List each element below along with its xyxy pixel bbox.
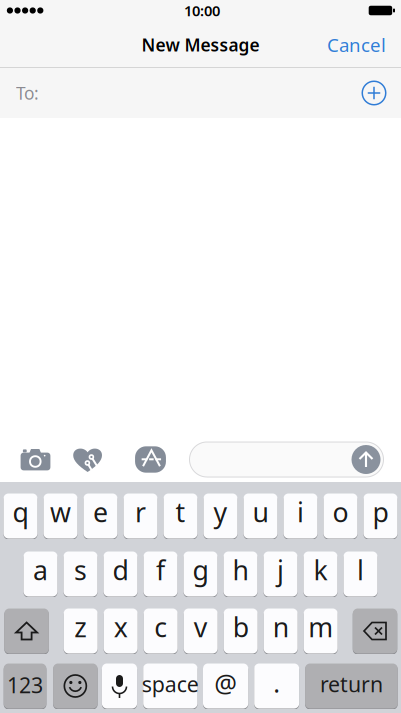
button[interactable]: n	[264, 608, 298, 654]
staticText: h	[232, 552, 248, 588]
staticText: n	[273, 609, 289, 645]
staticText: 123	[7, 671, 43, 699]
button[interactable]: s	[63, 551, 97, 597]
staticText: k	[313, 552, 327, 588]
staticText: d	[112, 552, 128, 588]
staticText: f	[156, 552, 165, 588]
staticText: e	[93, 494, 108, 530]
button[interactable]: w	[43, 493, 77, 539]
button[interactable]: r	[123, 493, 157, 539]
button[interactable]: App Store	[113, 438, 182, 480]
staticText: a	[33, 552, 48, 588]
button[interactable]: space	[143, 663, 197, 709]
staticText: c	[154, 609, 167, 645]
button[interactable]: Camera	[9, 438, 61, 480]
staticText: space	[142, 670, 199, 698]
button[interactable]: Cancel	[321, 25, 392, 64]
button[interactable]: Numbers	[4, 663, 46, 709]
staticText: s	[74, 552, 87, 588]
button[interactable]: Delete	[353, 608, 397, 654]
button[interactable]: Add contact	[362, 81, 386, 105]
staticText: .	[273, 666, 280, 700]
staticText: v	[194, 609, 208, 645]
staticText: y	[213, 494, 227, 530]
button[interactable]: h	[223, 551, 257, 597]
staticText: New Message	[141, 33, 259, 56]
button[interactable]: b	[224, 608, 258, 654]
button[interactable]: u	[243, 493, 277, 539]
staticText: Cancel	[327, 32, 386, 57]
button[interactable]: k	[303, 551, 337, 597]
button[interactable]: d	[103, 551, 137, 597]
staticText: 10:00	[184, 1, 220, 20]
button[interactable]: e	[83, 493, 117, 539]
button[interactable]: f	[143, 551, 177, 597]
button[interactable]: z	[64, 608, 98, 654]
staticText: u	[252, 494, 268, 530]
staticText: b	[233, 609, 249, 645]
staticText: p	[372, 494, 388, 530]
staticText: i	[297, 494, 304, 530]
button[interactable]: c	[144, 608, 178, 654]
button[interactable]: Send	[351, 445, 380, 474]
button[interactable]: v	[184, 608, 218, 654]
staticText: l	[357, 552, 364, 588]
staticText: w	[50, 494, 71, 530]
staticText: t	[175, 494, 185, 530]
button[interactable]: Dictate	[102, 663, 137, 709]
staticText: m	[308, 609, 333, 645]
button[interactable]: Return	[305, 663, 398, 709]
staticText: @	[214, 666, 237, 700]
staticText: z	[74, 609, 87, 645]
staticText: return	[320, 670, 383, 698]
button[interactable]: Emoji	[53, 663, 98, 709]
staticText: To:	[16, 81, 39, 104]
button[interactable]: @	[203, 663, 248, 709]
staticText: r	[135, 494, 146, 530]
button[interactable]: Digital Touch	[61, 438, 113, 480]
button[interactable]: i	[283, 493, 317, 539]
button[interactable]: m	[304, 608, 338, 654]
button[interactable]: t	[163, 493, 197, 539]
button[interactable]: a	[23, 551, 57, 597]
button[interactable]: p	[363, 493, 397, 539]
staticText: x	[114, 609, 128, 645]
staticText: j	[277, 552, 284, 588]
button[interactable]: .	[254, 663, 299, 709]
staticText: o	[332, 494, 348, 530]
button[interactable]: y	[203, 493, 237, 539]
button[interactable]: q	[3, 493, 37, 539]
button[interactable]: x	[104, 608, 138, 654]
button[interactable]: o	[323, 493, 357, 539]
button[interactable]: g	[183, 551, 217, 597]
button[interactable]: l	[343, 551, 377, 597]
staticText: g	[192, 552, 208, 588]
button[interactable]: j	[263, 551, 297, 597]
button[interactable]: Shift	[4, 608, 49, 654]
staticText: q	[12, 494, 28, 530]
